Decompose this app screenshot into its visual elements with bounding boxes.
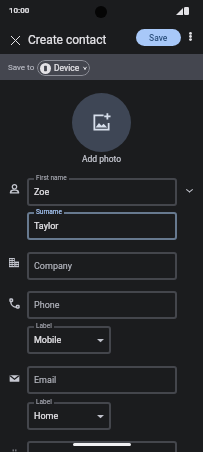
- button[interactable]: [27, 291, 177, 319]
- button[interactable]: Save: [136, 29, 181, 46]
- staticText: Surname: [36, 208, 62, 216]
- button[interactable]: [27, 252, 177, 280]
- staticText: Home: [34, 411, 59, 422]
- button[interactable]: Device: [37, 60, 90, 76]
- button[interactable]: More options: [182, 28, 199, 45]
- staticText: Phone: [34, 300, 60, 311]
- staticText: Create contact: [28, 33, 107, 47]
- staticText: Save to: [8, 63, 35, 72]
- staticText: Label: [36, 322, 52, 330]
- button[interactable]: [27, 326, 111, 354]
- staticText: Taylor: [34, 221, 59, 232]
- staticText: Email: [34, 375, 57, 386]
- staticText: Label: [36, 398, 52, 406]
- button[interactable]: Expand name fields: [181, 182, 197, 198]
- staticText: Add photo: [82, 154, 122, 164]
- button[interactable]: Close: [5, 30, 25, 50]
- staticText: Company: [34, 261, 73, 272]
- staticText: First name: [36, 174, 67, 182]
- staticText: 10:00: [9, 6, 30, 15]
- button[interactable]: [27, 366, 177, 394]
- button[interactable]: [27, 441, 177, 452]
- button[interactable]: [27, 178, 177, 206]
- staticText: Save: [149, 33, 168, 43]
- staticText: Mobile: [34, 335, 62, 346]
- button[interactable]: [27, 212, 177, 240]
- button[interactable]: [27, 402, 111, 430]
- staticText: Device: [54, 63, 80, 73]
- staticText: Zoe: [34, 187, 50, 198]
- button[interactable]: Add photo: [72, 93, 131, 152]
